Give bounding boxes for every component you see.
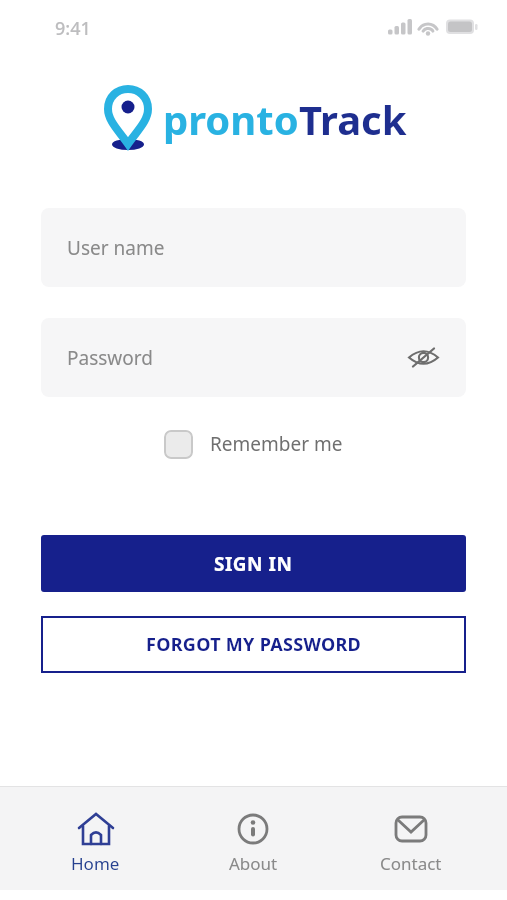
- button[interactable]: Contact: [332, 786, 490, 890]
- staticText: SIGN IN: [214, 551, 293, 577]
- staticText: FORGOT MY PASSWORD: [146, 632, 362, 657]
- button[interactable]: Home: [17, 786, 174, 890]
- button[interactable]: User name: [41, 208, 466, 287]
- staticText: Track: [299, 92, 407, 146]
- staticText: About: [229, 852, 278, 875]
- button[interactable]: Remember me: [0, 428, 507, 460]
- staticText: Home: [71, 852, 120, 875]
- button[interactable]: Password: [41, 318, 466, 397]
- staticText: Remember me: [210, 431, 343, 457]
- button[interactable]: About: [174, 786, 332, 890]
- staticText: Password: [67, 345, 153, 371]
- staticText: pronto: [163, 92, 299, 146]
- staticText: User name: [67, 235, 165, 261]
- button[interactable]: FORGOT MY PASSWORD: [41, 616, 466, 673]
- staticText: Contact: [380, 852, 442, 875]
- staticText: 9:41: [55, 16, 91, 41]
- button[interactable]: SIGN IN: [41, 535, 466, 592]
